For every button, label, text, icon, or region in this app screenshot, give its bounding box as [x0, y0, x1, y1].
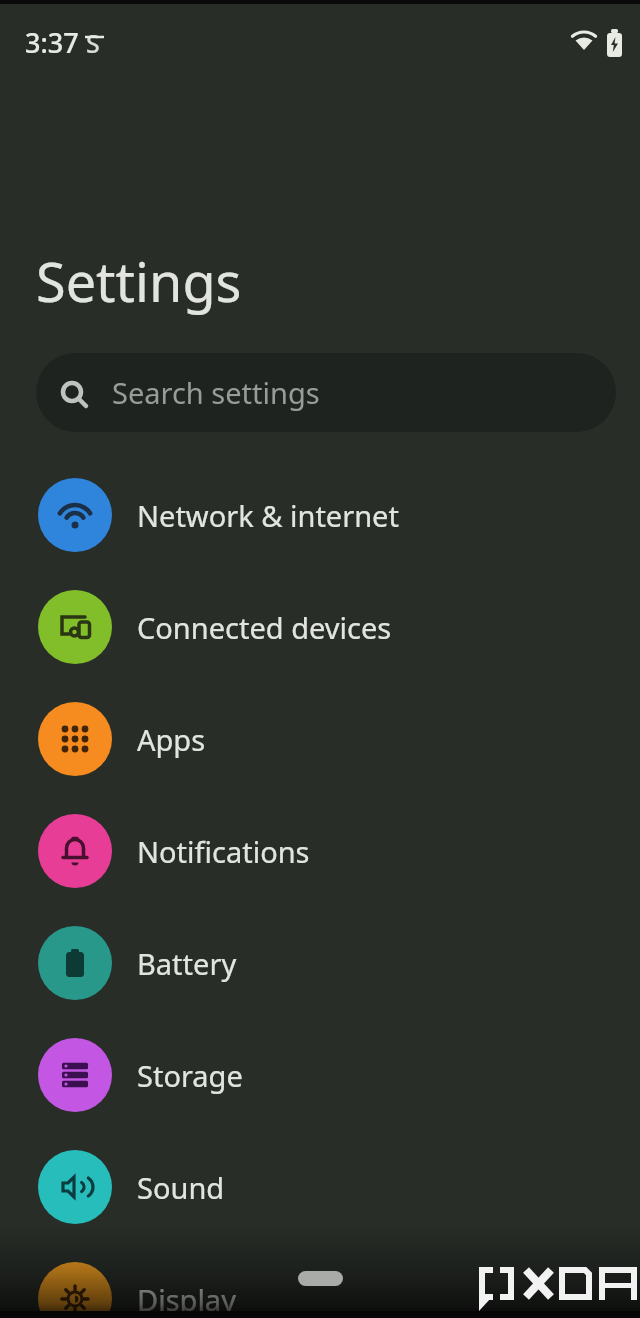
- staticText: Storage: [137, 1056, 243, 1095]
- staticText: Sound: [137, 1168, 225, 1207]
- staticText: Settings: [36, 244, 242, 318]
- staticText: Connected devices: [137, 608, 392, 647]
- staticText: Display: [137, 1280, 236, 1318]
- staticText: S: [86, 26, 100, 60]
- button[interactable]: Sound: [0, 1131, 640, 1243]
- staticText: Battery: [137, 944, 237, 983]
- staticText: Search settings: [112, 373, 320, 412]
- staticText: 3:37: [25, 24, 79, 61]
- button[interactable]: Connected devices: [0, 571, 640, 683]
- button[interactable]: Notifications: [0, 795, 640, 907]
- button[interactable]: Storage: [0, 1019, 640, 1131]
- button[interactable]: [298, 1271, 343, 1286]
- button[interactable]: Display: [0, 1243, 640, 1318]
- button[interactable]: Apps: [0, 683, 640, 795]
- button[interactable]: Network & internet: [0, 459, 640, 571]
- button[interactable]: Battery: [0, 907, 640, 1019]
- staticText: Notifications: [137, 832, 310, 871]
- staticText: Network & internet: [137, 496, 399, 535]
- button[interactable]: Search settings: [36, 353, 616, 432]
- staticText: Apps: [137, 720, 206, 759]
